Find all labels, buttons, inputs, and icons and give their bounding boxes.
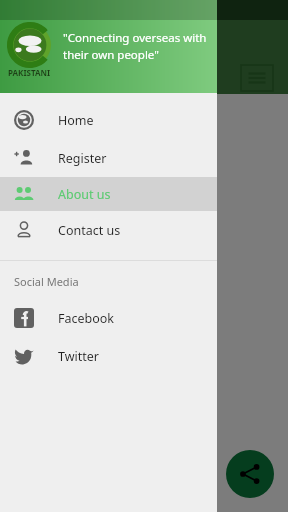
- button[interactable]: Twitter: [0, 337, 217, 375]
- staticText: "Connecting overseas with their own peop…: [63, 30, 213, 62]
- button[interactable]: About us: [0, 177, 217, 211]
- staticText: Register: [58, 150, 107, 167]
- staticText: Facebook: [58, 310, 115, 327]
- staticText: Pakistani overseas portal Through use of…: [14, 242, 137, 449]
- staticText: About us: [58, 186, 111, 203]
- button[interactable]: Share: [226, 450, 274, 498]
- button[interactable]: Contact us: [0, 211, 217, 249]
- staticText: Twitter: [58, 348, 99, 365]
- staticText: Social Media: [14, 274, 79, 289]
- button[interactable]: Register: [0, 139, 217, 177]
- staticText: "Connecting overseas with their own peop…: [14, 188, 152, 218]
- button[interactable]: Open navigation drawer: [240, 64, 274, 92]
- staticText: Contact us: [58, 222, 121, 239]
- staticText: Home: [58, 112, 94, 129]
- button[interactable]: Facebook: [0, 299, 217, 337]
- staticText: PAKISTANI: [8, 67, 51, 78]
- button[interactable]: Home: [0, 101, 217, 139]
